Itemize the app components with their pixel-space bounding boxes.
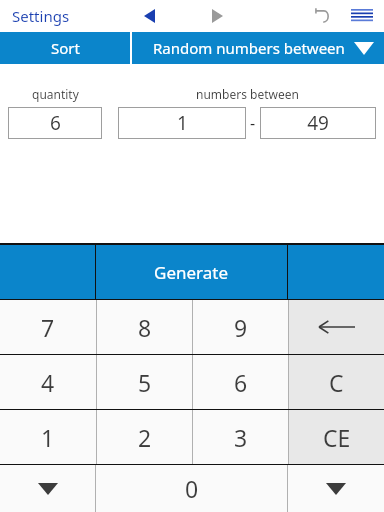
button[interactable]: Next <box>204 3 230 29</box>
staticText: C <box>329 367 344 398</box>
staticText: 1 <box>177 110 188 136</box>
button[interactable]: Previous <box>136 3 162 29</box>
staticText: 5 <box>138 367 152 398</box>
button[interactable]: 7 <box>0 300 96 354</box>
button[interactable]: 5 <box>97 355 192 409</box>
staticText: 7 <box>41 312 55 343</box>
staticText: 1 <box>41 422 55 453</box>
staticText: 6 <box>50 110 61 136</box>
button[interactable]: 6 <box>8 107 102 139</box>
button[interactable]: 1 <box>0 410 96 464</box>
button[interactable]: 9 <box>193 300 288 354</box>
button[interactable]: Decrease <box>0 465 95 512</box>
button[interactable]: 4 <box>0 355 96 409</box>
button[interactable]: 3 <box>193 410 288 464</box>
staticText: 9 <box>234 312 248 343</box>
staticText: Random numbers between <box>153 38 345 58</box>
button[interactable]: 0 <box>96 465 287 512</box>
staticText: 8 <box>138 312 152 343</box>
button[interactable]: 8 <box>97 300 192 354</box>
staticText: - <box>250 112 256 134</box>
button[interactable]: 49 <box>260 107 376 139</box>
staticText: 4 <box>41 367 55 398</box>
staticText: quantity <box>32 86 79 102</box>
button[interactable]: Generate <box>96 245 287 299</box>
staticText: CE <box>323 422 351 453</box>
staticText: numbers between <box>196 86 299 102</box>
staticText: 2 <box>138 422 152 453</box>
staticText: 0 <box>185 473 199 504</box>
button[interactable]: CE <box>289 410 384 464</box>
staticText: 6 <box>234 367 248 398</box>
button[interactable]: Sort <box>0 32 130 64</box>
button[interactable]: Backspace <box>289 300 384 354</box>
button[interactable]: Menu <box>346 0 378 32</box>
staticText: Generate <box>154 261 229 284</box>
button[interactable]: 2 <box>97 410 192 464</box>
staticText: Settings <box>12 6 70 26</box>
staticText: Sort <box>51 38 80 58</box>
button[interactable]: Random numbers between <box>132 32 384 64</box>
staticText: 49 <box>307 110 329 136</box>
button[interactable]: 6 <box>193 355 288 409</box>
button[interactable]: Undo <box>308 2 336 30</box>
button[interactable]: C <box>289 355 384 409</box>
button[interactable]: Settings <box>8 2 74 30</box>
staticText: 3 <box>234 422 248 453</box>
button[interactable]: 1 <box>118 107 246 139</box>
button[interactable]: Decrease <box>288 465 384 512</box>
